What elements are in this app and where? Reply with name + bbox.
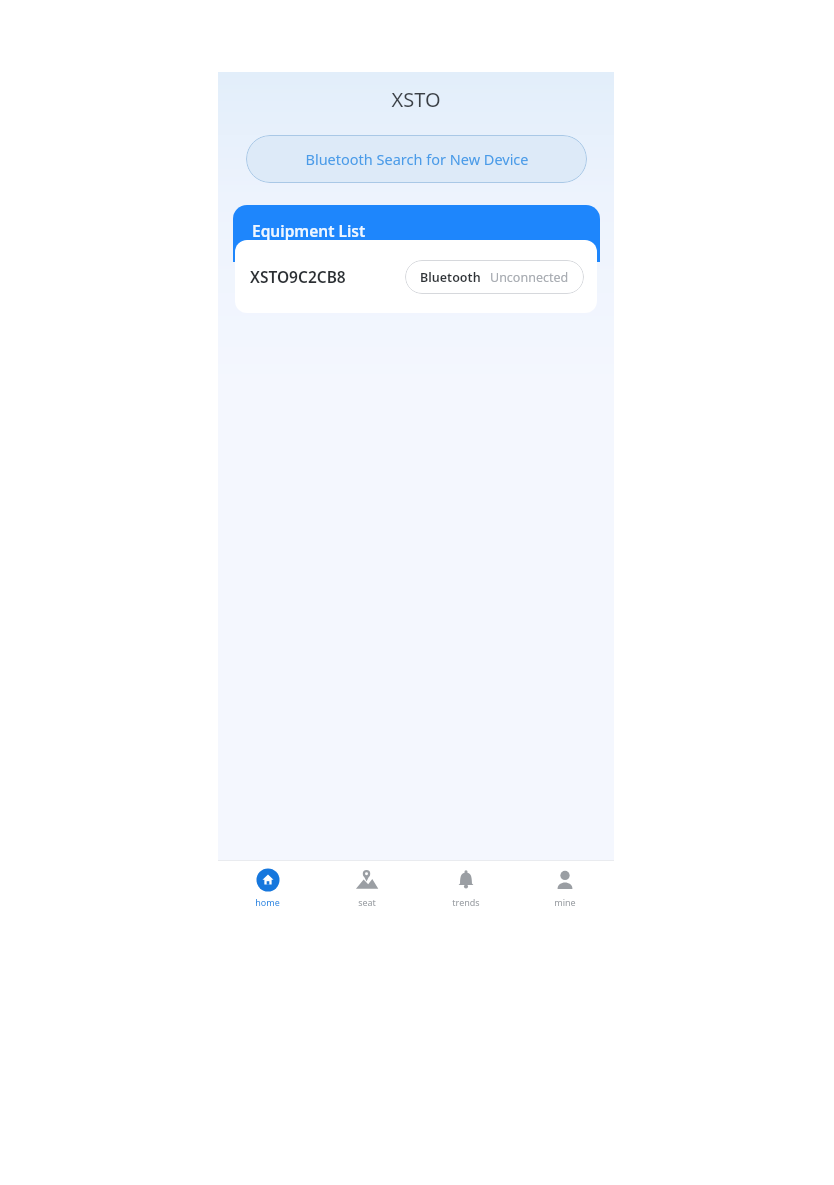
staticText: XSTO9C2CB8 <box>250 266 346 287</box>
staticText: Unconnected <box>490 269 569 286</box>
button[interactable]: Bluetooth <box>405 260 584 294</box>
staticText: trends <box>452 896 480 908</box>
staticText: Equipment List <box>252 220 366 241</box>
button[interactable]: Bluetooth Search for New Device <box>246 135 587 183</box>
staticText: XSTO <box>391 86 441 113</box>
button[interactable]: XSTO9C2CB8 <box>235 240 597 313</box>
staticText: Bluetooth Search for New Device <box>305 149 529 169</box>
staticText: home <box>255 896 280 908</box>
staticText: Bluetooth <box>420 269 481 286</box>
button[interactable]: home <box>218 860 317 915</box>
button[interactable]: mine <box>515 860 614 915</box>
staticText: seat <box>358 896 376 908</box>
button[interactable]: seat <box>317 860 416 915</box>
button[interactable]: trends <box>416 860 515 915</box>
staticText: mine <box>554 896 576 908</box>
